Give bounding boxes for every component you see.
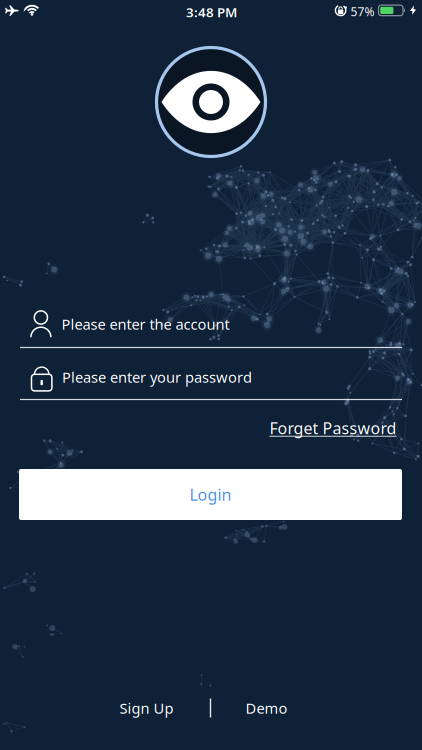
- staticText: Forget Password: [269, 417, 396, 439]
- staticText: 3:48 PM: [186, 3, 237, 21]
- staticText: Please enter your password: [62, 367, 252, 387]
- button[interactable]: Login: [19, 469, 402, 520]
- staticText: Demo: [245, 698, 287, 718]
- staticText: Login: [189, 484, 231, 505]
- staticText: Please enter the account: [61, 314, 229, 334]
- button[interactable]: Sign Up: [119, 698, 173, 718]
- button[interactable]: Forget Password: [269, 417, 396, 439]
- staticText: 57%: [350, 3, 374, 19]
- staticText: Sign Up: [119, 698, 173, 718]
- button[interactable]: Demo: [245, 698, 287, 718]
